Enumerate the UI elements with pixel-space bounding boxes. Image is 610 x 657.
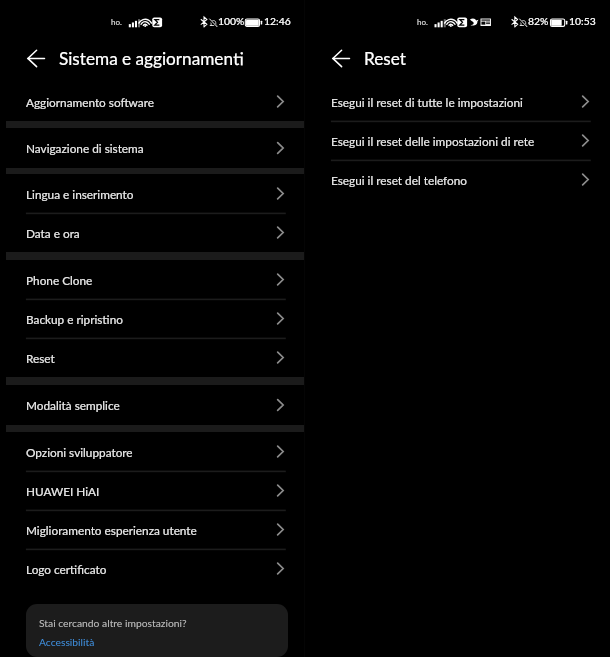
button[interactable]: Aggiornamento software: [0, 82, 305, 121]
staticText: Modalità semplice: [26, 398, 120, 412]
staticText: Opzioni sviluppatore: [26, 445, 133, 459]
staticText: 12:46: [264, 15, 291, 27]
button[interactable]: Opzioni sviluppatore: [0, 432, 305, 471]
staticText: Logo certificato: [26, 562, 107, 576]
staticText: Esegui il reset delle impostazioni di re…: [331, 134, 535, 148]
button[interactable]: Logo certificato: [0, 549, 305, 588]
staticText: Esegui il reset di tutte le impostazioni: [331, 95, 523, 109]
staticText: Reset: [364, 48, 406, 69]
button[interactable]: Back: [24, 46, 48, 70]
button[interactable]: Esegui il reset delle impostazioni di re…: [305, 121, 610, 160]
button[interactable]: Phone Clone: [0, 260, 305, 299]
button[interactable]: Esegui il reset di tutte le impostazioni: [305, 82, 610, 121]
button[interactable]: Lingua e inserimento: [0, 174, 305, 213]
staticText: Phone Clone: [26, 273, 93, 287]
staticText: Accessibilità: [39, 636, 95, 648]
button[interactable]: Stai cercando altre impostazioni?: [26, 604, 288, 657]
staticText: Aggiornamento software: [26, 95, 154, 109]
button[interactable]: Data e ora: [0, 213, 305, 252]
staticText: 10:53: [569, 15, 596, 27]
button[interactable]: Reset: [0, 338, 305, 377]
button[interactable]: Navigazione di sistema: [0, 128, 305, 168]
staticText: 100%: [218, 15, 245, 27]
staticText: 82%: [528, 15, 549, 27]
staticText: Stai cercando altre impostazioni?: [39, 617, 187, 629]
button[interactable]: Backup e ripristino: [0, 299, 305, 338]
staticText: ho.: [111, 17, 122, 27]
staticText: Reset: [26, 351, 55, 365]
staticText: Data e ora: [26, 226, 80, 240]
staticText: Sistema e aggiornamenti: [59, 48, 244, 69]
button[interactable]: Modalità semplice: [0, 385, 305, 425]
button[interactable]: HUAWEI HiAI: [0, 471, 305, 510]
staticText: HUAWEI HiAI: [26, 484, 100, 498]
staticText: ho.: [417, 17, 428, 27]
button[interactable]: Miglioramento esperienza utente: [0, 510, 305, 549]
staticText: Miglioramento esperienza utente: [26, 523, 197, 537]
staticText: Esegui il reset del telefono: [331, 173, 468, 187]
staticText: Navigazione di sistema: [26, 141, 144, 155]
button[interactable]: Back: [329, 46, 353, 70]
button[interactable]: Esegui il reset del telefono: [305, 160, 610, 199]
staticText: Backup e ripristino: [26, 312, 123, 326]
staticText: Lingua e inserimento: [26, 187, 134, 201]
